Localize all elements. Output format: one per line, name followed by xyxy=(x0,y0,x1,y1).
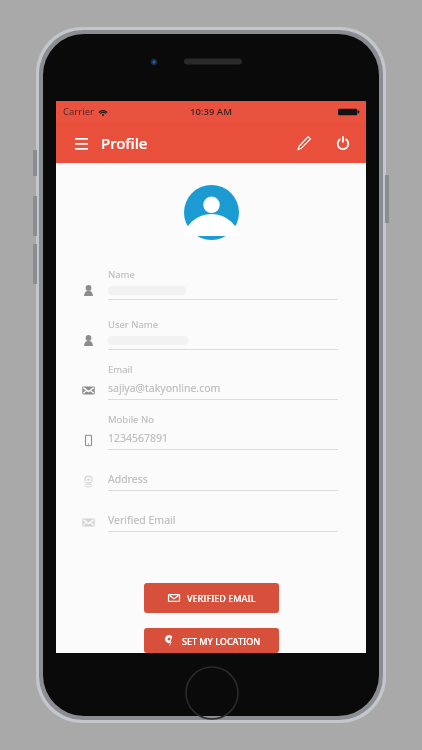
staticText: sajiya@takyonline.com xyxy=(108,381,221,395)
staticText: SET MY LOCATION xyxy=(182,635,261,647)
staticText: Email xyxy=(108,363,133,376)
staticText: Verified Email xyxy=(108,513,176,527)
staticText: Carrier xyxy=(63,105,94,118)
staticText: Profile xyxy=(101,133,148,153)
button[interactable]: User Name xyxy=(56,306,366,356)
button[interactable]: Email xyxy=(56,356,366,406)
button[interactable]: Log out xyxy=(328,128,358,158)
button[interactable]: Menu xyxy=(68,130,94,156)
button[interactable]: Profile photo xyxy=(184,185,239,240)
staticText: 1234567891 xyxy=(108,431,169,445)
staticText: VERIFIED EMAIL xyxy=(187,592,256,604)
button[interactable]: Mobile No xyxy=(56,406,366,456)
button[interactable]: Verified Email xyxy=(56,497,366,538)
staticText: User Name xyxy=(108,318,159,331)
button[interactable]: Address xyxy=(56,456,366,497)
button[interactable]: SET MY LOCATION xyxy=(144,628,279,653)
staticText: Name xyxy=(108,268,135,281)
staticText: Mobile No xyxy=(108,413,154,426)
staticText: 10:39 AM xyxy=(190,105,233,118)
button[interactable]: Name xyxy=(56,256,366,306)
button[interactable]: VERIFIED EMAIL xyxy=(144,583,279,613)
button[interactable]: Edit xyxy=(289,128,319,158)
staticText: Address xyxy=(108,472,148,486)
